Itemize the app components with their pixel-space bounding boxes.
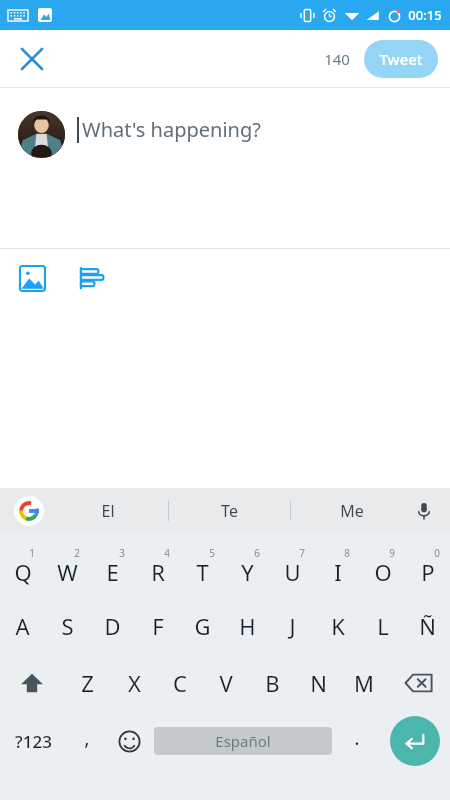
staticText: 9 bbox=[389, 546, 395, 560]
button[interactable]: 2 bbox=[45, 537, 90, 597]
staticText: . bbox=[354, 724, 360, 751]
staticText: 7 bbox=[299, 546, 305, 560]
button[interactable]: Español bbox=[154, 727, 332, 755]
button[interactable]: 1 bbox=[0, 537, 45, 597]
staticText: W bbox=[57, 557, 78, 587]
button[interactable]: B bbox=[249, 654, 295, 711]
staticText: X bbox=[128, 668, 141, 698]
button[interactable]: Me bbox=[291, 488, 412, 533]
staticText: I bbox=[334, 557, 342, 587]
button[interactable]: K bbox=[315, 597, 360, 654]
staticText: C bbox=[173, 668, 187, 698]
button[interactable]: 6 bbox=[225, 537, 270, 597]
button[interactable]: Z bbox=[64, 654, 111, 711]
button[interactable]: D bbox=[90, 597, 135, 654]
staticText: Z bbox=[81, 668, 94, 698]
staticText: , bbox=[84, 724, 90, 751]
staticText: B bbox=[265, 668, 280, 698]
staticText: H bbox=[239, 611, 256, 641]
button[interactable]: Tweet bbox=[364, 40, 438, 78]
staticText: A bbox=[15, 611, 30, 641]
button[interactable]: . bbox=[335, 711, 379, 771]
staticText: T bbox=[196, 557, 209, 587]
button[interactable]: 7 bbox=[270, 537, 315, 597]
staticText: 1 bbox=[29, 546, 35, 560]
staticText: V bbox=[219, 668, 233, 698]
button[interactable]: J bbox=[270, 597, 315, 654]
staticText: F bbox=[152, 611, 164, 641]
button[interactable]: Emoji bbox=[107, 711, 151, 771]
button[interactable]: What's happening? bbox=[77, 116, 450, 143]
button[interactable]: ?123 bbox=[0, 711, 66, 771]
staticText: 0 bbox=[434, 546, 440, 560]
staticText: R bbox=[151, 557, 165, 587]
button[interactable]: A bbox=[0, 597, 45, 654]
staticText: 3 bbox=[119, 546, 125, 560]
button[interactable]: 4 bbox=[135, 537, 180, 597]
staticText: Español bbox=[215, 731, 271, 751]
button[interactable]: G bbox=[180, 597, 225, 654]
button[interactable]: Te bbox=[169, 488, 290, 533]
staticText: 8 bbox=[344, 546, 350, 560]
button[interactable]: X bbox=[111, 654, 157, 711]
staticText: Q bbox=[14, 557, 32, 587]
button[interactable]: 0 bbox=[405, 537, 450, 597]
button[interactable]: 9 bbox=[360, 537, 405, 597]
staticText: J bbox=[289, 611, 296, 641]
staticText: U bbox=[284, 557, 301, 587]
staticText: G bbox=[194, 611, 211, 641]
button[interactable]: Backspace bbox=[387, 654, 450, 711]
button[interactable]: N bbox=[295, 654, 341, 711]
button[interactable]: H bbox=[225, 597, 270, 654]
button[interactable]: L bbox=[360, 597, 405, 654]
staticText: L bbox=[377, 611, 389, 641]
staticText: ?123 bbox=[15, 730, 52, 753]
button[interactable]: Ñ bbox=[405, 597, 450, 654]
button[interactable]: El bbox=[48, 488, 168, 533]
staticText: 00:15 bbox=[408, 6, 442, 24]
staticText: Y bbox=[241, 557, 254, 587]
button[interactable]: Add photo bbox=[12, 258, 52, 298]
button[interactable]: 3 bbox=[90, 537, 135, 597]
button[interactable]: 8 bbox=[315, 537, 360, 597]
staticText: E bbox=[106, 557, 119, 587]
staticText: K bbox=[331, 611, 345, 641]
staticText: P bbox=[421, 557, 435, 587]
staticText: 5 bbox=[209, 546, 215, 560]
button[interactable]: V bbox=[203, 654, 249, 711]
staticText: D bbox=[104, 611, 121, 641]
staticText: Ñ bbox=[419, 611, 436, 641]
staticText: 6 bbox=[254, 546, 260, 560]
staticText: N bbox=[310, 668, 327, 698]
button[interactable]: C bbox=[157, 654, 203, 711]
staticText: Te bbox=[221, 500, 238, 522]
button[interactable]: 5 bbox=[180, 537, 225, 597]
staticText: S bbox=[61, 611, 74, 641]
button[interactable]: F bbox=[135, 597, 180, 654]
staticText: What's happening? bbox=[82, 116, 261, 143]
staticText: El bbox=[101, 500, 115, 522]
staticText: Tweet bbox=[379, 49, 423, 69]
staticText: M bbox=[354, 668, 374, 698]
staticText: 4 bbox=[164, 546, 170, 560]
staticText: 140 bbox=[324, 49, 350, 69]
staticText: O bbox=[374, 557, 392, 587]
button[interactable]: Add poll bbox=[71, 258, 111, 298]
button[interactable]: Close bbox=[10, 37, 54, 81]
button[interactable]: S bbox=[45, 597, 90, 654]
button[interactable]: Voice input bbox=[406, 493, 442, 529]
button[interactable]: Shift bbox=[0, 654, 64, 711]
staticText: 2 bbox=[74, 546, 80, 560]
button[interactable]: Google bbox=[14, 496, 44, 526]
button[interactable]: M bbox=[341, 654, 387, 711]
button[interactable]: , bbox=[66, 711, 107, 771]
staticText: Me bbox=[340, 500, 364, 522]
button[interactable]: Enter bbox=[379, 711, 450, 771]
